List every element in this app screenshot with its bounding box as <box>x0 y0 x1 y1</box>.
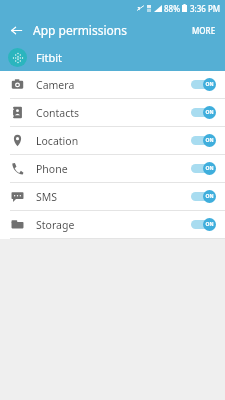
staticText: ON <box>205 165 214 172</box>
staticText: ON <box>205 221 214 228</box>
staticText: Fitbit <box>36 50 63 65</box>
button[interactable]: Contacts <box>0 99 225 126</box>
button[interactable]: Toggle permission, on <box>190 106 216 119</box>
button[interactable]: Navigate up <box>6 20 26 40</box>
staticText: 3:36 PM <box>190 3 221 14</box>
staticText: SMS <box>36 190 58 204</box>
button[interactable]: Toggle permission, on <box>190 134 216 147</box>
button[interactable]: Camera <box>0 71 225 98</box>
staticText: Contacts <box>36 106 80 120</box>
staticText: Camera <box>36 78 75 92</box>
staticText: MORE <box>192 25 216 36</box>
button[interactable]: MORE <box>189 22 219 39</box>
button[interactable]: Phone <box>0 155 225 182</box>
staticText: App permissions <box>33 22 127 38</box>
staticText: Storage <box>36 218 75 232</box>
button[interactable]: Fitbit <box>0 44 225 71</box>
button[interactable]: Toggle permission, on <box>190 162 216 175</box>
button[interactable]: Toggle permission, on <box>190 190 216 203</box>
staticText: 88% <box>164 3 180 14</box>
button[interactable]: Storage <box>0 211 225 238</box>
staticText: Location <box>36 134 79 148</box>
button[interactable]: Toggle permission, on <box>190 78 216 91</box>
staticText: ON <box>205 109 214 116</box>
button[interactable]: Location <box>0 127 225 154</box>
staticText: Phone <box>36 162 68 176</box>
staticText: ON <box>205 193 214 200</box>
button[interactable]: SMS <box>0 183 225 210</box>
staticText: ON <box>205 81 214 88</box>
button[interactable]: Toggle permission, on <box>190 218 216 231</box>
staticText: ON <box>205 137 214 144</box>
